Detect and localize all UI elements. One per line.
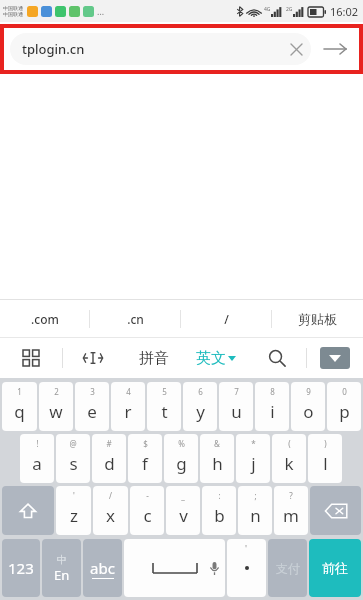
button[interactable]: 1 bbox=[2, 382, 37, 431]
button[interactable]: Move cursor bbox=[63, 338, 123, 378]
button[interactable]: Clear bbox=[281, 34, 311, 64]
staticText: 拼音 bbox=[139, 349, 169, 368]
staticText: h bbox=[212, 452, 223, 475]
staticText: a bbox=[32, 452, 42, 475]
button[interactable]: # bbox=[92, 434, 126, 483]
staticText: i bbox=[270, 400, 275, 423]
staticText: En bbox=[54, 566, 70, 584]
button[interactable]: _ bbox=[166, 486, 200, 535]
button[interactable]: .com bbox=[0, 300, 90, 337]
button[interactable]: ) bbox=[308, 434, 342, 483]
staticText: 4 bbox=[126, 386, 131, 397]
staticText: * bbox=[251, 438, 256, 449]
staticText: q bbox=[14, 400, 25, 423]
button[interactable]: 0 bbox=[327, 382, 361, 431]
button[interactable]: - bbox=[130, 486, 164, 535]
staticText: ( bbox=[288, 438, 291, 449]
button[interactable]: abc bbox=[83, 539, 122, 597]
staticText: abc bbox=[90, 558, 115, 578]
button[interactable]: 8 bbox=[255, 382, 289, 431]
button[interactable]: Shift bbox=[2, 486, 54, 535]
staticText: g bbox=[176, 452, 187, 475]
staticText: 2 bbox=[54, 386, 59, 397]
staticText: w bbox=[49, 400, 63, 423]
staticText: l bbox=[323, 452, 328, 475]
button[interactable]: Search bbox=[248, 338, 306, 378]
button[interactable]: @ bbox=[56, 434, 90, 483]
button[interactable]: Backspace bbox=[310, 486, 361, 535]
button[interactable]: 拼音 bbox=[123, 338, 184, 378]
staticText: m bbox=[283, 504, 299, 527]
button[interactable]: 中 bbox=[42, 539, 81, 597]
staticText: o bbox=[303, 400, 314, 423]
button[interactable]: / bbox=[181, 300, 272, 337]
button[interactable]: 123 bbox=[2, 539, 40, 597]
staticText: t bbox=[161, 400, 168, 423]
button[interactable]: tplogin.cn bbox=[10, 33, 311, 65]
staticText: ! bbox=[36, 438, 39, 449]
staticText: 6 bbox=[198, 386, 203, 397]
button[interactable]: 前往 bbox=[309, 539, 361, 597]
staticText: & bbox=[214, 438, 220, 449]
staticText: $ bbox=[143, 438, 148, 449]
staticText: .com bbox=[31, 311, 59, 327]
staticText: ' bbox=[73, 490, 75, 501]
staticText: 4G bbox=[264, 6, 271, 13]
staticText: x bbox=[106, 504, 115, 527]
button[interactable]: / bbox=[93, 486, 128, 535]
button[interactable]: 3 bbox=[75, 382, 109, 431]
button[interactable]: 9 bbox=[291, 382, 325, 431]
staticText: % bbox=[178, 438, 185, 449]
staticText: 剪贴板 bbox=[298, 311, 337, 327]
button[interactable]: % bbox=[164, 434, 198, 483]
staticText: @ bbox=[69, 438, 77, 449]
button[interactable]: 英文 bbox=[184, 338, 248, 378]
button[interactable]: 2 bbox=[39, 382, 73, 431]
staticText: ) bbox=[324, 438, 327, 449]
staticText: 7 bbox=[234, 386, 239, 397]
button[interactable]: 支付 bbox=[268, 539, 307, 597]
button[interactable]: ( bbox=[272, 434, 306, 483]
button[interactable]: : bbox=[202, 486, 236, 535]
staticText: u bbox=[231, 400, 242, 423]
button[interactable]: Go bbox=[311, 28, 359, 70]
button[interactable]: 4 bbox=[111, 382, 145, 431]
staticText: 前往 bbox=[322, 560, 348, 576]
button[interactable]: Hide keyboard bbox=[307, 338, 363, 378]
staticText: y bbox=[196, 400, 205, 423]
button[interactable]: 5 bbox=[147, 382, 181, 431]
button[interactable]: ; bbox=[238, 486, 272, 535]
staticText: c bbox=[143, 504, 152, 527]
staticText: j bbox=[251, 452, 256, 475]
button[interactable]: $ bbox=[128, 434, 162, 483]
button[interactable]: * bbox=[236, 434, 270, 483]
staticText: 中国联通 bbox=[3, 11, 23, 17]
staticText: ; bbox=[254, 490, 257, 501]
staticText: - bbox=[146, 490, 149, 501]
staticText: 8 bbox=[270, 386, 275, 397]
staticText: 英文 bbox=[196, 349, 226, 368]
button[interactable]: ' bbox=[56, 486, 91, 535]
staticText: ? bbox=[289, 490, 293, 501]
button[interactable]: Space bbox=[124, 539, 225, 597]
button[interactable]: 剪贴板 bbox=[272, 300, 363, 337]
staticText: 16:02 bbox=[330, 4, 359, 19]
staticText: 中国联通 bbox=[3, 5, 23, 11]
staticText: k bbox=[284, 452, 294, 475]
staticText: 123 bbox=[8, 558, 34, 578]
staticText: _ bbox=[181, 490, 185, 501]
staticText: p bbox=[339, 400, 350, 423]
button[interactable]: & bbox=[200, 434, 234, 483]
button[interactable]: Keyboard menu bbox=[0, 338, 62, 378]
button[interactable]: .cn bbox=[90, 300, 181, 337]
button[interactable]: ? bbox=[274, 486, 308, 535]
staticText: 9 bbox=[306, 386, 311, 397]
staticText: z bbox=[70, 504, 78, 527]
staticText: v bbox=[179, 504, 188, 527]
button[interactable]: ! bbox=[20, 434, 54, 483]
button[interactable]: Period bbox=[227, 539, 266, 597]
staticText: .cn bbox=[127, 311, 144, 327]
staticText: s bbox=[69, 452, 78, 475]
button[interactable]: 7 bbox=[219, 382, 253, 431]
button[interactable]: 6 bbox=[183, 382, 217, 431]
